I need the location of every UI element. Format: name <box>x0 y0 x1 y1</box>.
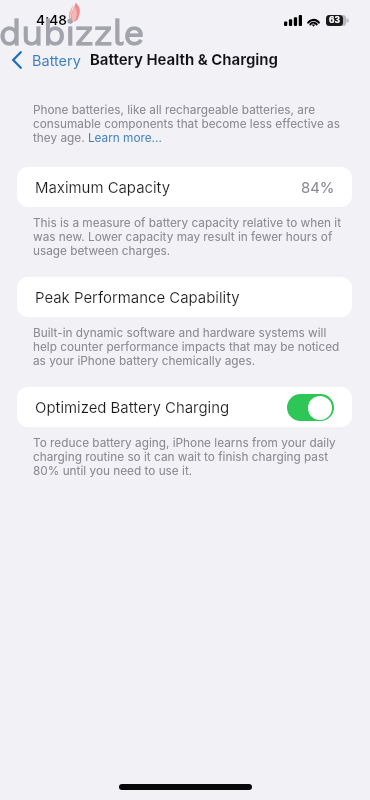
other: Wi-Fi <box>306 14 321 26</box>
staticText: Battery <box>32 52 81 70</box>
other: Cellular signal <box>284 15 302 26</box>
staticText: 4:48 <box>36 12 67 28</box>
button[interactable]: Optimized Battery Charging <box>17 387 352 427</box>
staticText: Phone batteries, like all rechargeable b… <box>33 103 344 145</box>
button[interactable]: Battery <box>12 52 81 70</box>
button[interactable]: Peak Performance Capability <box>17 277 352 317</box>
staticText: Maximum Capacity <box>35 179 171 197</box>
staticText: 84% <box>301 179 335 197</box>
staticText: dubizzle <box>0 12 145 54</box>
staticText: Built-in dynamic software and hardware s… <box>33 326 344 368</box>
staticText: 63 <box>329 15 341 25</box>
staticText: This is a measure of battery capacity re… <box>33 216 344 258</box>
staticText: Peak Performance Capability <box>35 289 240 307</box>
staticText: To reduce battery aging, iPhone learns f… <box>33 436 344 478</box>
staticText: Optimized Battery Charging <box>35 399 230 417</box>
other: Battery 63 percent <box>326 15 349 26</box>
staticText: Battery Health & Charging <box>90 51 279 69</box>
button[interactable]: Optimized Battery Charging toggle <box>287 394 334 421</box>
button[interactable]: Maximum Capacity <box>17 167 352 207</box>
